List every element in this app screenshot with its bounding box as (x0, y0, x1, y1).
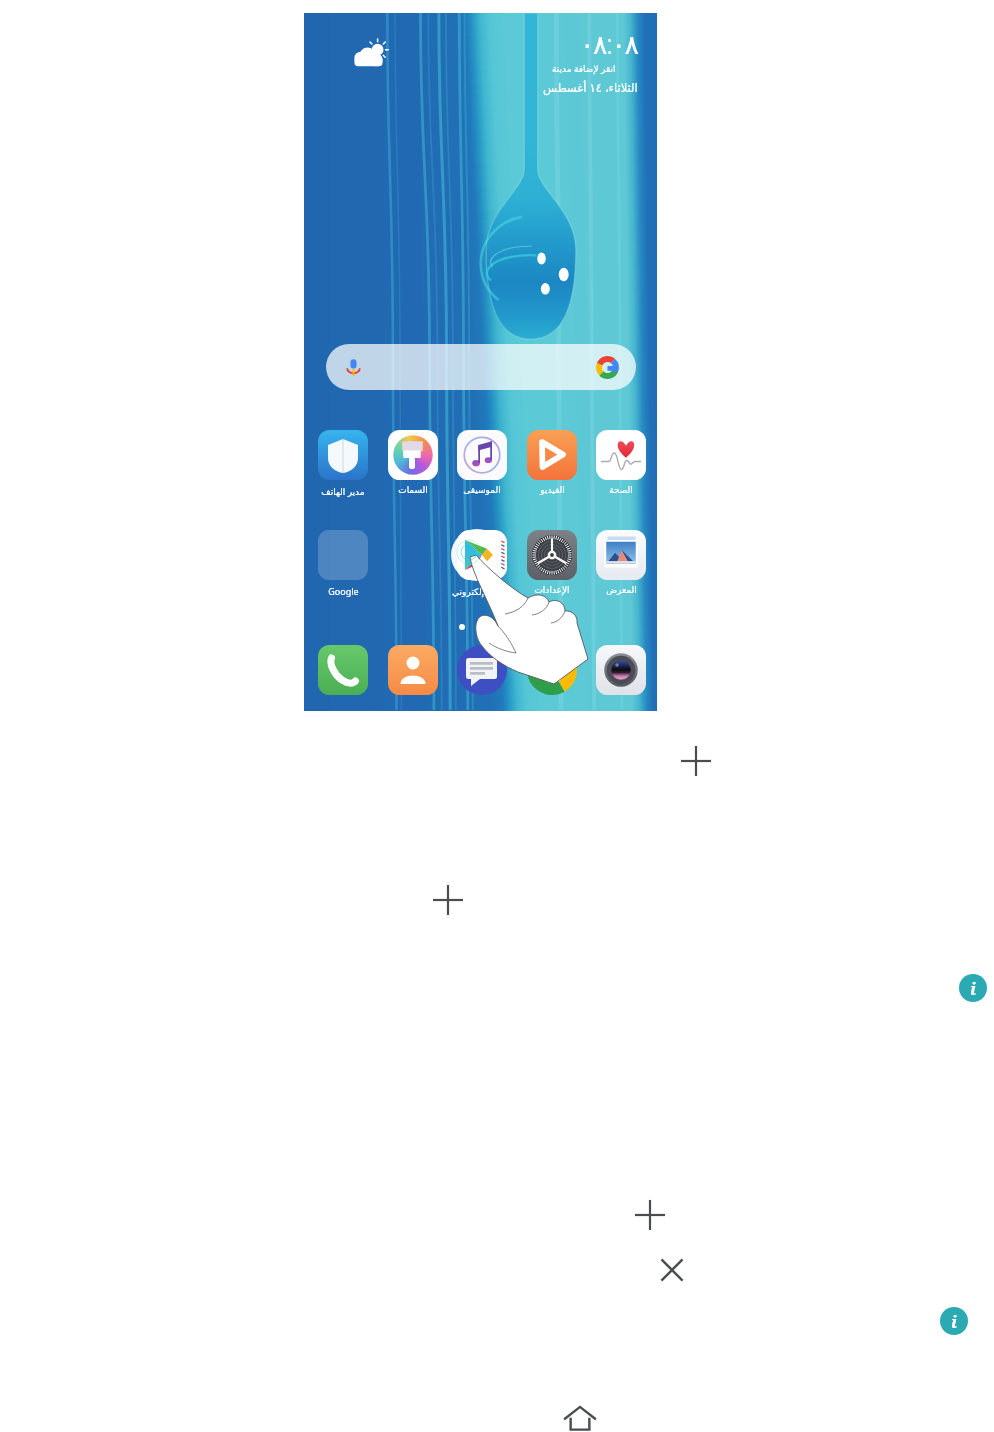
staticText: المعرض (606, 585, 637, 595)
staticText: السمات (398, 485, 428, 495)
staticText: i (951, 1310, 958, 1333)
button[interactable]: مدير الهاتف (318, 430, 368, 497)
button[interactable]: Information (959, 974, 987, 1002)
staticText: Google (328, 585, 359, 597)
button[interactable]: Search (326, 344, 636, 390)
button[interactable]: الصحة (596, 430, 646, 495)
button[interactable]: الفيديو (527, 430, 577, 495)
staticText: مدير الهاتف (321, 485, 365, 497)
staticText: الصحة (609, 485, 633, 495)
staticText: الثلاثاء، ١٤ أغسطس (543, 80, 638, 96)
staticText: البريد الإلكتروني (452, 585, 512, 597)
button[interactable]: السمات (388, 430, 438, 495)
button[interactable]: الموسيقى (457, 430, 507, 495)
staticText: انقر لإضافة مدينة (552, 62, 616, 74)
button[interactable]: المعرض (596, 530, 646, 595)
button[interactable]: Add (680, 745, 712, 777)
button[interactable]: البريد الإلكتروني (439, 530, 525, 597)
button[interactable]: الإعدادات (527, 530, 577, 595)
staticText: الفيديو (540, 485, 565, 495)
button[interactable]: Camera (596, 645, 646, 695)
staticText: ٠٨:٠٨ (580, 25, 638, 62)
staticText: i (970, 977, 977, 1000)
button[interactable]: Chrome (527, 645, 577, 695)
button[interactable]: Messages (457, 645, 507, 695)
button[interactable]: Close (656, 1254, 688, 1286)
staticText: الإعدادات (534, 585, 570, 595)
button[interactable]: Add (634, 1199, 666, 1231)
staticText: الموسيقى (463, 485, 501, 495)
button[interactable]: Home (562, 1399, 598, 1432)
button[interactable]: Add (432, 884, 464, 916)
button[interactable]: Phone (318, 645, 368, 695)
button[interactable]: Contacts (388, 645, 438, 695)
button[interactable]: Google (318, 530, 368, 597)
button[interactable]: Information (940, 1307, 968, 1335)
